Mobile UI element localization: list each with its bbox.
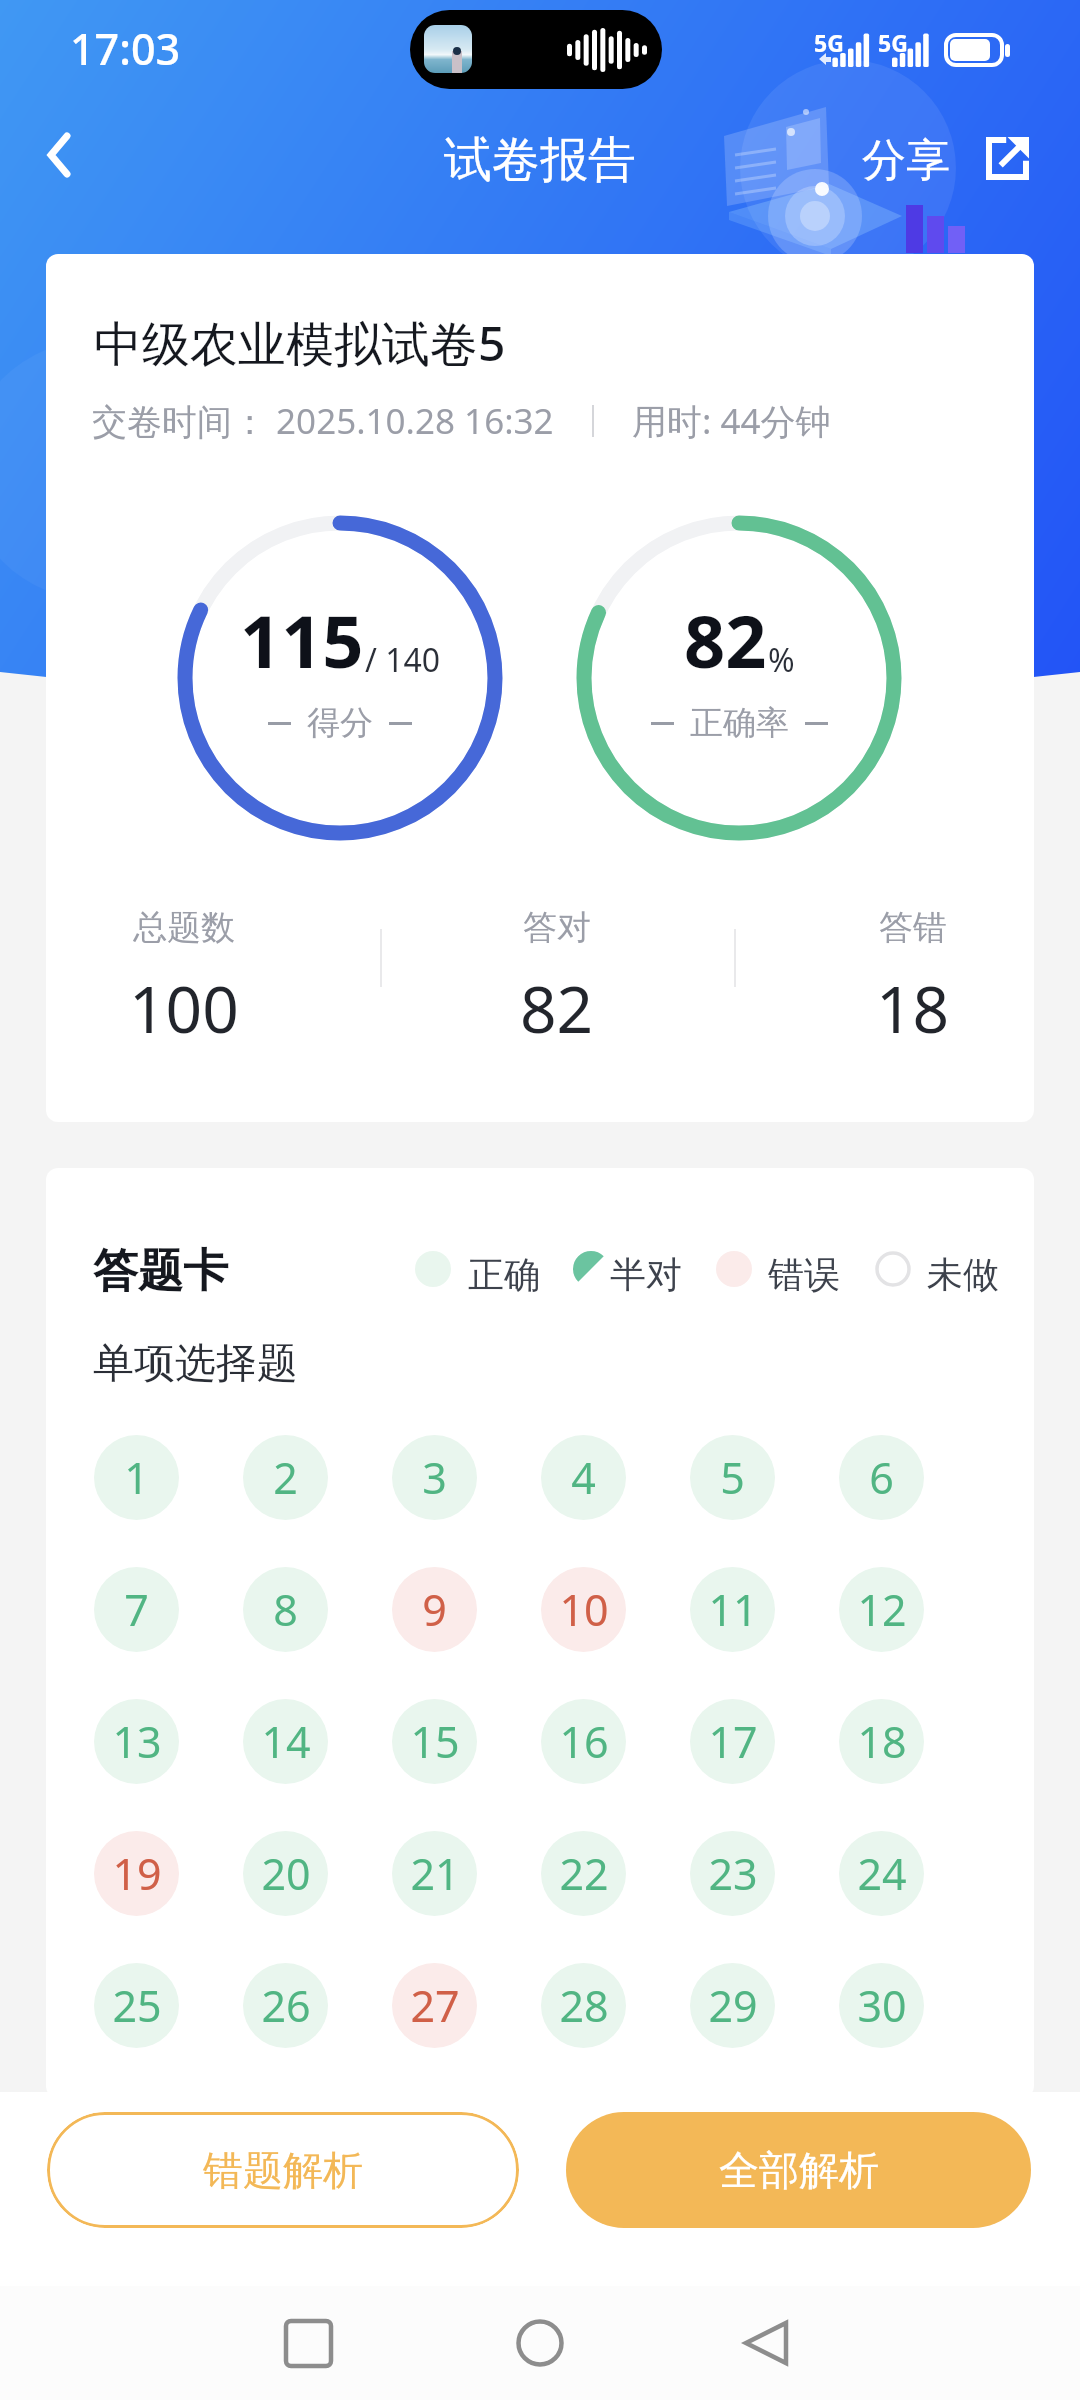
staticText: 中级农业模拟试卷5 bbox=[94, 310, 506, 376]
button[interactable]: 29 bbox=[690, 1963, 775, 2048]
button[interactable]: 12 bbox=[839, 1567, 924, 1652]
staticText: 14 bbox=[261, 1712, 311, 1771]
staticText: 答错 bbox=[879, 906, 947, 949]
button[interactable]: 20 bbox=[243, 1831, 328, 1916]
button[interactable]: 22 bbox=[541, 1831, 626, 1916]
staticText: 错误 bbox=[768, 1252, 840, 1297]
button[interactable]: 8 bbox=[243, 1567, 328, 1652]
button[interactable]: 13 bbox=[94, 1699, 179, 1784]
staticText: 18 bbox=[876, 965, 950, 1052]
staticText: 21 bbox=[410, 1844, 460, 1903]
button[interactable]: 17 bbox=[690, 1699, 775, 1784]
staticText: 得分 bbox=[307, 702, 373, 744]
staticText: 19 bbox=[112, 1844, 162, 1903]
staticText: 10 bbox=[559, 1580, 609, 1639]
button[interactable]: 27 bbox=[392, 1963, 477, 2048]
staticText: 28 bbox=[559, 1976, 609, 2035]
staticText: 全部解析 bbox=[719, 2145, 879, 2195]
staticText: 23 bbox=[708, 1844, 758, 1903]
staticText: / 140 bbox=[365, 638, 441, 682]
staticText: 正确 bbox=[468, 1252, 540, 1297]
staticText: 15 bbox=[410, 1712, 460, 1771]
staticText: 总题数 bbox=[133, 906, 235, 949]
button[interactable]: Back bbox=[721, 2298, 811, 2388]
button[interactable]: 6 bbox=[839, 1435, 924, 1520]
staticText: 30 bbox=[857, 1976, 907, 2035]
staticText: 5G bbox=[878, 27, 908, 58]
button[interactable]: 分享 bbox=[862, 133, 1029, 188]
staticText: 答题卡 bbox=[93, 1243, 228, 1300]
staticText: 1 bbox=[124, 1448, 149, 1507]
staticText: 5G bbox=[814, 27, 844, 58]
staticText: 未做 bbox=[927, 1252, 999, 1297]
staticText: 分享 bbox=[862, 133, 950, 188]
button[interactable]: 19 bbox=[94, 1831, 179, 1916]
staticText: 正确率 bbox=[690, 702, 789, 744]
staticText: 8 bbox=[273, 1580, 298, 1639]
button[interactable]: 26 bbox=[243, 1963, 328, 2048]
button[interactable]: 28 bbox=[541, 1963, 626, 2048]
button[interactable]: 2 bbox=[243, 1435, 328, 1520]
button[interactable]: 7 bbox=[94, 1567, 179, 1652]
staticText: 25 bbox=[112, 1976, 162, 2035]
button[interactable]: 14 bbox=[243, 1699, 328, 1784]
button[interactable]: 25 bbox=[94, 1963, 179, 2048]
staticText: 用时: 44分钟 bbox=[632, 397, 831, 445]
staticText: 4 bbox=[571, 1448, 596, 1507]
staticText: 3 bbox=[422, 1448, 447, 1507]
staticText: 115 bbox=[240, 591, 364, 689]
button[interactable]: Recents bbox=[263, 2298, 353, 2388]
staticText: 7 bbox=[124, 1580, 149, 1639]
staticText: 100 bbox=[129, 965, 239, 1052]
button[interactable]: 10 bbox=[541, 1567, 626, 1652]
staticText: % bbox=[768, 638, 795, 682]
staticText: 9 bbox=[422, 1580, 447, 1639]
button[interactable]: 30 bbox=[839, 1963, 924, 2048]
staticText: 22 bbox=[559, 1844, 609, 1903]
staticText: 5 bbox=[720, 1448, 745, 1507]
staticText: 82 bbox=[520, 965, 594, 1052]
staticText: 12 bbox=[857, 1580, 907, 1639]
staticText: 半对 bbox=[610, 1252, 682, 1297]
staticText: 26 bbox=[261, 1976, 311, 2035]
staticText: 2 bbox=[273, 1448, 298, 1507]
staticText: 24 bbox=[857, 1844, 907, 1903]
button[interactable]: 16 bbox=[541, 1699, 626, 1784]
button[interactable]: 18 bbox=[839, 1699, 924, 1784]
staticText: 13 bbox=[112, 1712, 162, 1771]
staticText: 17 bbox=[708, 1712, 758, 1771]
button[interactable]: 23 bbox=[690, 1831, 775, 1916]
button[interactable]: 4 bbox=[541, 1435, 626, 1520]
staticText: 试卷报告 bbox=[444, 130, 636, 190]
staticText: 27 bbox=[410, 1976, 460, 2035]
staticText: 16 bbox=[559, 1712, 609, 1771]
button[interactable]: Back bbox=[4, 100, 114, 210]
button[interactable]: 1 bbox=[94, 1435, 179, 1520]
staticText: 82 bbox=[684, 591, 767, 689]
staticText: 18 bbox=[857, 1712, 907, 1771]
button[interactable]: 21 bbox=[392, 1831, 477, 1916]
staticText: 交卷时间： 2025.10.28 16:32 bbox=[92, 397, 554, 445]
button[interactable]: 24 bbox=[839, 1831, 924, 1916]
button[interactable]: 3 bbox=[392, 1435, 477, 1520]
staticText: 29 bbox=[708, 1976, 758, 2035]
staticText: 6 bbox=[869, 1448, 894, 1507]
button[interactable]: 15 bbox=[392, 1699, 477, 1784]
staticText: 答对 bbox=[523, 906, 591, 949]
button[interactable]: 全部解析 bbox=[566, 2112, 1031, 2228]
staticText: 17:03 bbox=[70, 19, 181, 78]
button[interactable]: 9 bbox=[392, 1567, 477, 1652]
staticText: 20 bbox=[261, 1844, 311, 1903]
button[interactable]: 11 bbox=[690, 1567, 775, 1652]
staticText: 单项选择题 bbox=[93, 1338, 298, 1390]
staticText: 11 bbox=[708, 1580, 758, 1639]
staticText: 错题解析 bbox=[203, 2145, 363, 2195]
button[interactable]: 错题解析 bbox=[47, 2112, 519, 2228]
button[interactable]: Home bbox=[495, 2298, 585, 2388]
button[interactable]: 5 bbox=[690, 1435, 775, 1520]
